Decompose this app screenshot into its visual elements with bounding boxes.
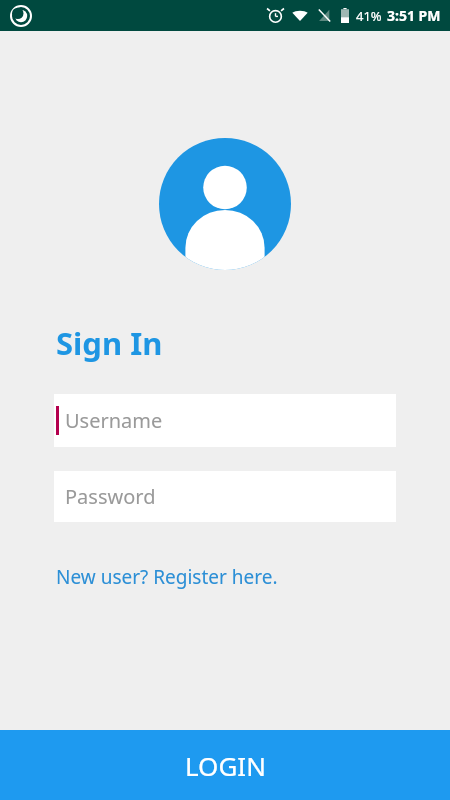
staticText: LOGIN	[185, 748, 266, 783]
staticText: Sign In	[56, 322, 163, 364]
staticText: Password	[65, 483, 156, 510]
other: Profile avatar	[159, 138, 291, 270]
button[interactable]: Password	[54, 471, 396, 522]
other: Do not disturb	[11, 6, 31, 26]
staticText: 41%	[356, 7, 382, 25]
staticText: 3:51 PM	[387, 6, 441, 25]
staticText: Username	[65, 407, 163, 434]
button[interactable]: LOGIN	[0, 730, 450, 800]
button[interactable]: New user? Register here.	[56, 564, 278, 590]
button[interactable]: Username	[54, 394, 396, 447]
staticText: New user? Register here.	[56, 564, 278, 590]
